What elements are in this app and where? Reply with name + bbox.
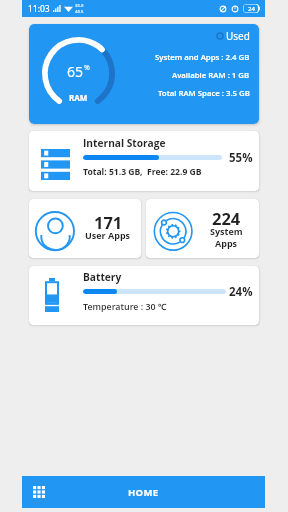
staticText: HOME (128, 486, 159, 499)
button[interactable]: Apps (27, 480, 51, 504)
staticText: User Apps (85, 229, 131, 241)
staticText: Used (226, 29, 250, 43)
staticText: Temperature : 30 ℃ (83, 300, 167, 312)
staticText: Total RAM Space : 3.5 GB (158, 88, 250, 99)
staticText: 24% (229, 284, 253, 300)
button[interactable]: 224 (146, 199, 259, 258)
staticText: Available RAM : 1 GB (172, 70, 250, 81)
staticText: System and Apps : 2.4 GB (155, 52, 250, 63)
staticText: 65 (67, 62, 84, 81)
button[interactable]: 171 (29, 199, 141, 258)
staticText: 35.0 (75, 3, 84, 9)
button[interactable]: Internal Storage (29, 131, 259, 191)
staticText: 55% (229, 150, 253, 166)
staticText: 24 (248, 5, 255, 13)
staticText: Battery (83, 270, 122, 284)
staticText: System (210, 225, 243, 237)
staticText: Internal Storage (83, 136, 166, 150)
staticText: 171 (94, 211, 123, 233)
staticText: Total: 51.3 GB, Free: 22.9 GB (83, 166, 202, 178)
button[interactable]: 65 (29, 24, 259, 124)
staticText: Apps (215, 237, 238, 249)
staticText: 224 (212, 207, 241, 229)
staticText: RAM (69, 92, 88, 103)
button[interactable]: Battery (29, 266, 259, 325)
staticText: 48.5 (75, 9, 84, 15)
button[interactable]: HOME (22, 476, 265, 508)
staticText: 11:03 (28, 3, 50, 15)
staticText: % (84, 63, 90, 73)
